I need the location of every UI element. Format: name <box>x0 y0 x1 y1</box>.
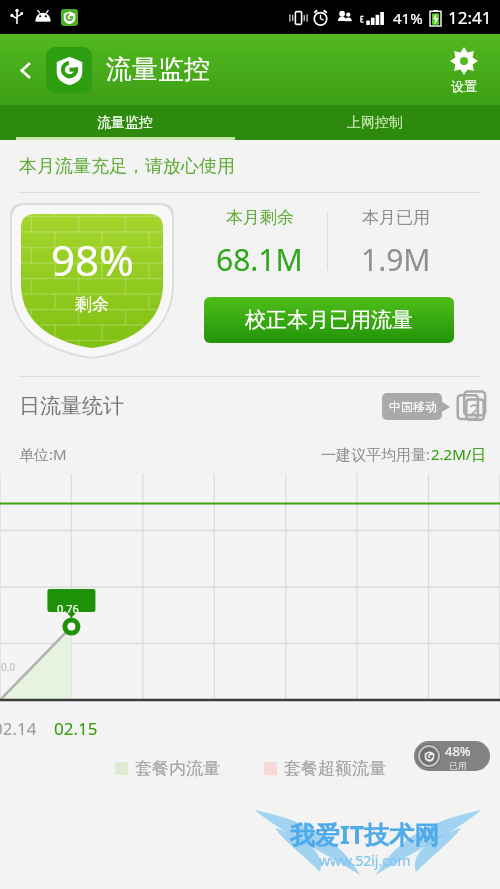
staticText: 2.2M/日 <box>431 444 487 464</box>
staticText: 日流量统计 <box>19 393 124 419</box>
button[interactable]: 套餐超额流量 <box>264 758 386 779</box>
staticText: 02.15 <box>54 717 98 740</box>
button[interactable]: 上网控制 <box>250 105 500 140</box>
staticText: 上网控制 <box>347 114 403 132</box>
button[interactable]: 套餐内流量 <box>115 758 220 779</box>
staticText: 单位:M <box>19 444 67 464</box>
staticText: 本月流量充足，请放心使用 <box>19 155 235 178</box>
button[interactable]: 流量监控 <box>0 105 250 140</box>
staticText: 48% <box>445 742 471 760</box>
staticText: 本月剩余 <box>226 207 294 228</box>
staticText: 流量监控 <box>97 114 153 132</box>
button[interactable]: 应用图标 <box>46 47 92 93</box>
staticText: 中国移动 <box>389 399 437 414</box>
staticText: 剩余 <box>75 294 109 315</box>
staticText: 套餐内流量 <box>135 758 220 779</box>
staticText: 已用 <box>449 760 467 771</box>
staticText: 本月已用 <box>362 207 430 228</box>
button[interactable]: 校正本月已用流量 <box>204 297 454 343</box>
button[interactable]: 设置 <box>436 39 492 101</box>
staticText: www.52ij.com <box>319 851 411 870</box>
staticText: 流量监控 <box>106 53 210 86</box>
button[interactable]: 返回 <box>4 49 46 91</box>
staticText: 68.1M <box>216 239 303 280</box>
staticText: 0.0 <box>1 660 16 674</box>
staticText: 我爱IT技术网 <box>290 817 440 851</box>
staticText: 02.14 <box>0 717 37 740</box>
staticText: 1.9M <box>361 239 431 280</box>
staticText: 套餐超额流量 <box>284 758 386 779</box>
staticText: 41% <box>393 8 423 28</box>
button[interactable]: 切换SIM卡 <box>382 388 488 424</box>
staticText: 一建议平均用量: <box>321 444 431 464</box>
button[interactable]: 已用 48% <box>414 741 490 771</box>
staticText: 校正本月已用流量 <box>245 307 413 333</box>
staticText: 0.76 <box>57 601 79 616</box>
staticText: 98% <box>51 231 134 288</box>
staticText: 设置 <box>451 78 477 94</box>
staticText: 12:41 <box>448 6 492 29</box>
